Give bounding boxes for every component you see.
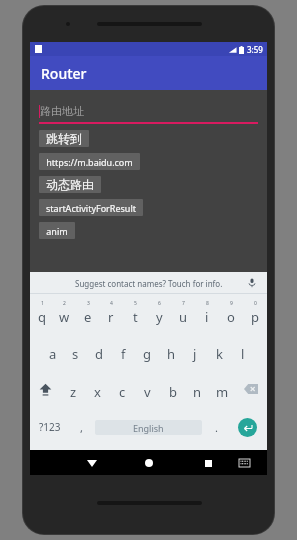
staticText: 路由地址: [40, 104, 84, 118]
button[interactable]: 6: [147, 294, 171, 332]
staticText: k: [216, 345, 223, 363]
button[interactable]: 动态路由: [39, 176, 101, 193]
button[interactable]: k: [207, 332, 231, 370]
staticText: ?123: [39, 420, 61, 434]
button[interactable]: l: [231, 332, 255, 370]
button[interactable]: z: [61, 370, 85, 408]
button[interactable]: 8: [195, 294, 219, 332]
button[interactable]: https://m.baidu.com: [39, 153, 140, 170]
staticText: 8: [206, 300, 209, 307]
staticText: a: [49, 345, 57, 363]
button[interactable]: Hide keyboard: [235, 454, 253, 472]
button[interactable]: English: [95, 420, 202, 435]
button[interactable]: anim: [39, 222, 75, 239]
staticText: w: [59, 308, 70, 326]
button[interactable]: v: [135, 370, 160, 408]
button[interactable]: j: [183, 332, 207, 370]
button[interactable]: 0: [243, 294, 267, 332]
button[interactable]: n: [185, 370, 210, 408]
button[interactable]: 2: [53, 294, 76, 332]
staticText: x: [94, 383, 101, 401]
button[interactable]: 跳转到: [39, 130, 89, 147]
staticText: t: [133, 308, 138, 326]
button[interactable]: Enter: [227, 408, 267, 446]
staticText: 4: [110, 300, 113, 307]
staticText: 1: [41, 300, 44, 307]
staticText: j: [193, 345, 197, 363]
button[interactable]: Home: [138, 452, 160, 474]
staticText: https://m.baidu.com: [46, 156, 133, 168]
staticText: o: [227, 308, 235, 326]
staticText: v: [144, 383, 151, 401]
staticText: 3: [87, 300, 90, 307]
staticText: Suggest contact names? Touch for info.: [75, 278, 223, 289]
button[interactable]: c: [110, 370, 135, 408]
button[interactable]: ,: [70, 408, 92, 446]
button[interactable]: f: [111, 332, 135, 370]
staticText: anim: [46, 225, 68, 237]
staticText: English: [133, 422, 164, 434]
button[interactable]: b: [160, 370, 185, 408]
staticText: 6: [158, 300, 161, 307]
button[interactable]: g: [135, 332, 159, 370]
staticText: c: [119, 383, 126, 401]
button[interactable]: s: [64, 332, 87, 370]
button[interactable]: Recents: [197, 452, 219, 474]
staticText: 动态路由: [46, 177, 94, 192]
button[interactable]: .: [205, 408, 227, 446]
button[interactable]: d: [87, 332, 111, 370]
button[interactable]: Back: [81, 452, 103, 474]
staticText: z: [70, 383, 77, 401]
staticText: .: [215, 420, 218, 435]
staticText: s: [72, 345, 79, 363]
staticText: ,: [80, 420, 83, 435]
staticText: l: [241, 345, 245, 363]
staticText: b: [169, 383, 177, 401]
staticText: startActivityForResult: [46, 202, 136, 214]
staticText: 0: [254, 300, 257, 307]
staticText: g: [143, 345, 151, 363]
button[interactable]: 4: [99, 294, 123, 332]
button[interactable]: h: [159, 332, 183, 370]
staticText: i: [205, 308, 209, 326]
button[interactable]: 5: [123, 294, 147, 332]
staticText: 3:59: [247, 44, 263, 55]
staticText: q: [38, 308, 46, 326]
staticText: h: [167, 345, 176, 363]
staticText: 跳转到: [46, 131, 82, 146]
button[interactable]: Shift: [30, 370, 61, 408]
staticText: e: [84, 308, 92, 326]
button[interactable]: ?123: [30, 408, 70, 446]
staticText: p: [251, 308, 259, 326]
staticText: 2: [63, 300, 66, 307]
staticText: f: [121, 345, 126, 363]
staticText: u: [179, 308, 188, 326]
staticText: d: [95, 345, 103, 363]
button[interactable]: 路由地址: [39, 98, 258, 124]
button[interactable]: startActivityForResult: [39, 199, 143, 216]
staticText: n: [193, 383, 202, 401]
staticText: 5: [134, 300, 137, 307]
button[interactable]: m: [210, 370, 235, 408]
staticText: 9: [230, 300, 233, 307]
staticText: r: [108, 308, 114, 326]
button[interactable]: a: [41, 332, 64, 370]
staticText: 7: [182, 300, 185, 307]
button[interactable]: 1: [30, 294, 53, 332]
button[interactable]: x: [85, 370, 110, 408]
staticText: y: [156, 308, 163, 326]
staticText: Router: [41, 64, 87, 83]
button[interactable]: 3: [76, 294, 99, 332]
button[interactable]: Backspace: [235, 370, 267, 408]
button[interactable]: 9: [219, 294, 243, 332]
staticText: m: [216, 383, 229, 401]
button[interactable]: 7: [171, 294, 195, 332]
